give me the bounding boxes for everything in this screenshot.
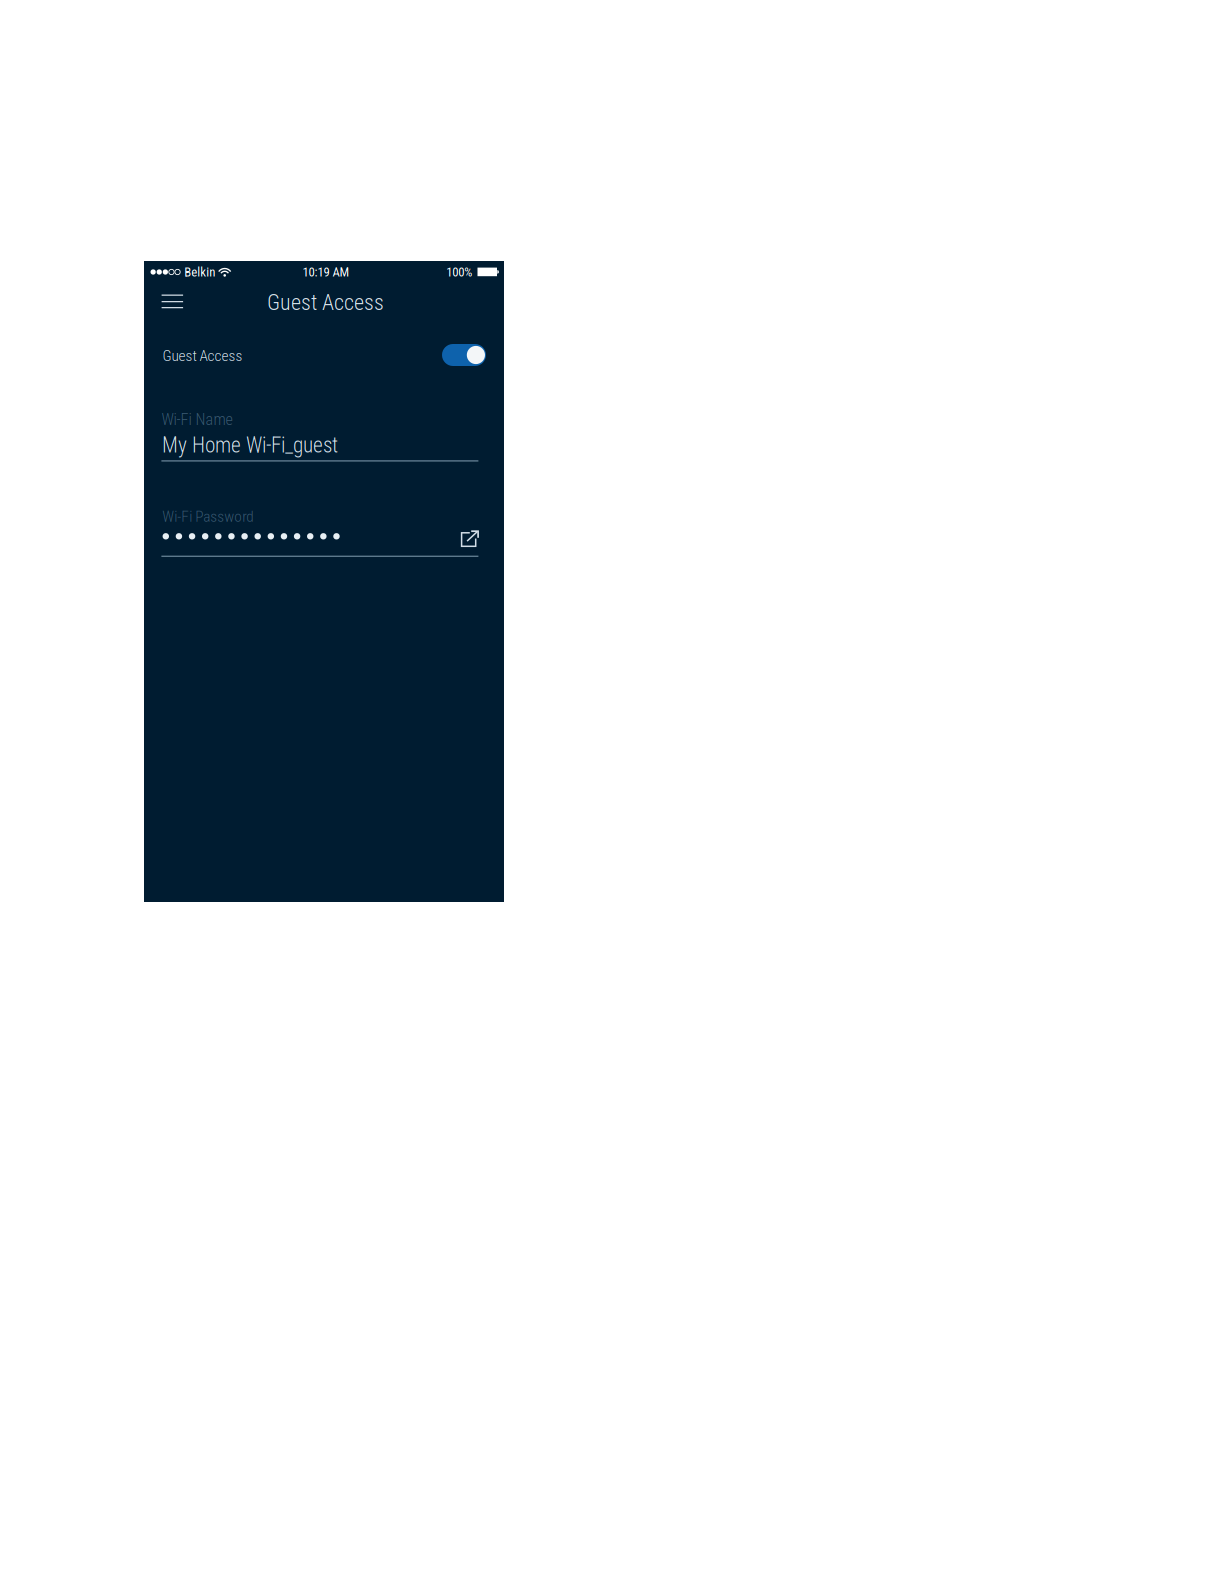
- button[interactable]: Guest Access: [161, 339, 486, 371]
- staticText: Guest Access: [267, 290, 384, 315]
- button[interactable]: Menu: [149, 282, 196, 320]
- staticText: My Home Wi-Fi_guest: [162, 433, 338, 458]
- staticText: Wi-Fi Password: [162, 508, 253, 526]
- button[interactable]: Wi-Fi Name: [161, 409, 478, 462]
- staticText: Belkin: [184, 264, 215, 279]
- staticText: 10:19 AM: [302, 264, 349, 279]
- button[interactable]: Wi-Fi Password: [161, 507, 451, 557]
- button[interactable]: Share Wi-Fi password: [461, 530, 479, 547]
- staticText: Guest Access: [162, 347, 242, 365]
- staticText: Wi-Fi Name: [161, 410, 232, 429]
- staticText: 100%: [446, 264, 472, 279]
